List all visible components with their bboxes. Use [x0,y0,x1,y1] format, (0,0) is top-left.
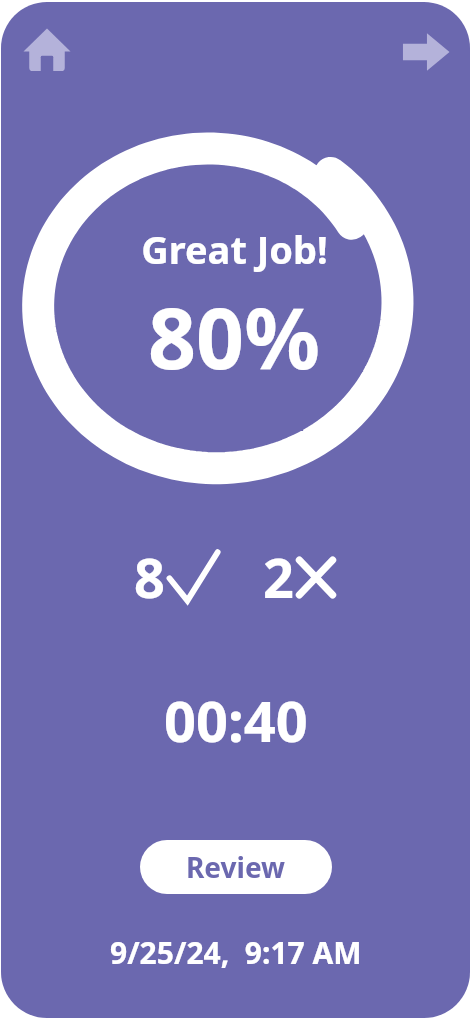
staticText: 80% [148,279,320,393]
button[interactable]: Next [402,28,450,76]
staticText: 2 [263,540,294,614]
staticText: Review [186,848,286,886]
button[interactable]: Review [140,840,332,894]
staticText: Great Job! [141,223,328,275]
staticText: 00:40 [164,682,308,758]
button[interactable]: Home [23,26,71,74]
staticText: 9/25/24, 9:17 AM [110,932,362,973]
staticText: 8 [134,540,165,614]
